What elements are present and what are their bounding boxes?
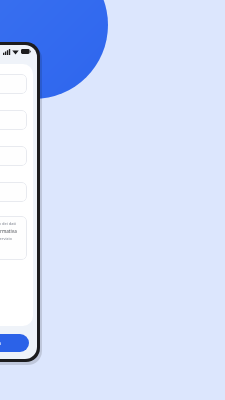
button[interactable]: Acconsento al trattamento dei dati — [0, 216, 27, 260]
button[interactable] — [0, 182, 27, 202]
staticText: personali come da informativa — [0, 228, 17, 234]
button[interactable] — [0, 74, 27, 94]
staticText: Acconsento al trattamento dei dati — [0, 221, 16, 226]
staticText: sulla privacy e termini di servizio — [0, 236, 12, 241]
button[interactable]: Continua — [0, 334, 29, 352]
button[interactable]: Indirizzo email — [0, 146, 27, 166]
staticText: Continua — [0, 339, 1, 347]
button[interactable] — [0, 110, 27, 130]
